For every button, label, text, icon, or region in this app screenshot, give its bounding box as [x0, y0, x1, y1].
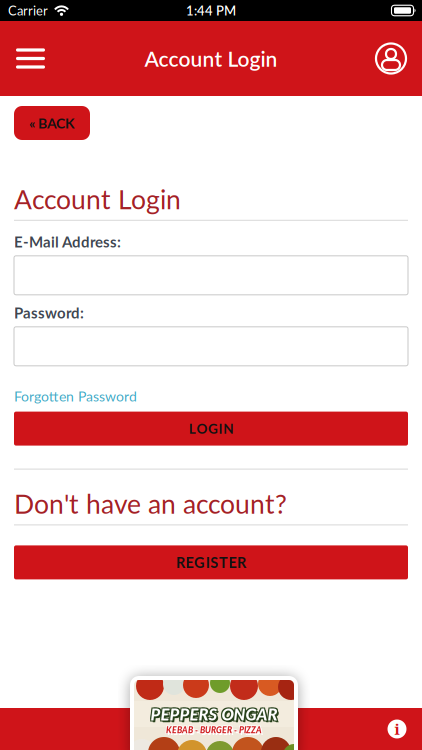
- staticText: KEBAB - BURGER - PIZZA: [167, 726, 263, 736]
- button[interactable]: Password: [14, 327, 408, 366]
- staticText: PEPPERS ONGAR: [151, 705, 278, 725]
- staticText: PEPPERS ONGAR: [152, 706, 279, 726]
- staticText: i: [394, 719, 399, 739]
- button[interactable]: Forgotten Password: [14, 388, 137, 405]
- button[interactable]: « BACK: [14, 106, 90, 140]
- staticText: PEPPERS ONGAR: [150, 704, 277, 724]
- staticText: Account Login: [14, 183, 181, 215]
- staticText: Forgotten Password: [14, 388, 137, 405]
- staticText: E-Mail Address:: [14, 233, 121, 251]
- staticText: Account Login: [144, 46, 277, 71]
- staticText: REGISTER: [176, 554, 246, 571]
- staticText: Password:: [14, 304, 84, 322]
- staticText: KEBAB - BURGER - PIZZA: [168, 726, 264, 737]
- staticText: LOGIN: [189, 420, 233, 437]
- staticText: PEPPERS ONGAR: [149, 705, 276, 725]
- staticText: PEPPERS ONGAR: [151, 703, 278, 723]
- button[interactable]: Account: [375, 26, 422, 90]
- staticText: KEBAB - BURGER - PIZZA: [165, 724, 261, 734]
- button[interactable]: LOGIN: [14, 412, 408, 446]
- staticText: KEBAB - BURGER - PIZZA: [166, 725, 262, 735]
- button[interactable]: Menu: [0, 30, 45, 87]
- button[interactable]: E-Mail Address: [14, 256, 408, 295]
- staticText: 1:44 PM: [186, 3, 236, 18]
- staticText: KEBAB - BURGER - PIZZA: [165, 726, 261, 736]
- staticText: KEBAB - BURGER - PIZZA: [167, 724, 263, 734]
- button[interactable]: REGISTER: [14, 545, 408, 579]
- button[interactable]: Info: [384, 716, 410, 742]
- staticText: « BACK: [29, 115, 75, 131]
- staticText: PEPPERS ONGAR: [149, 703, 276, 723]
- staticText: Don't have an account?: [14, 488, 287, 519]
- staticText: Carrier: [8, 3, 48, 18]
